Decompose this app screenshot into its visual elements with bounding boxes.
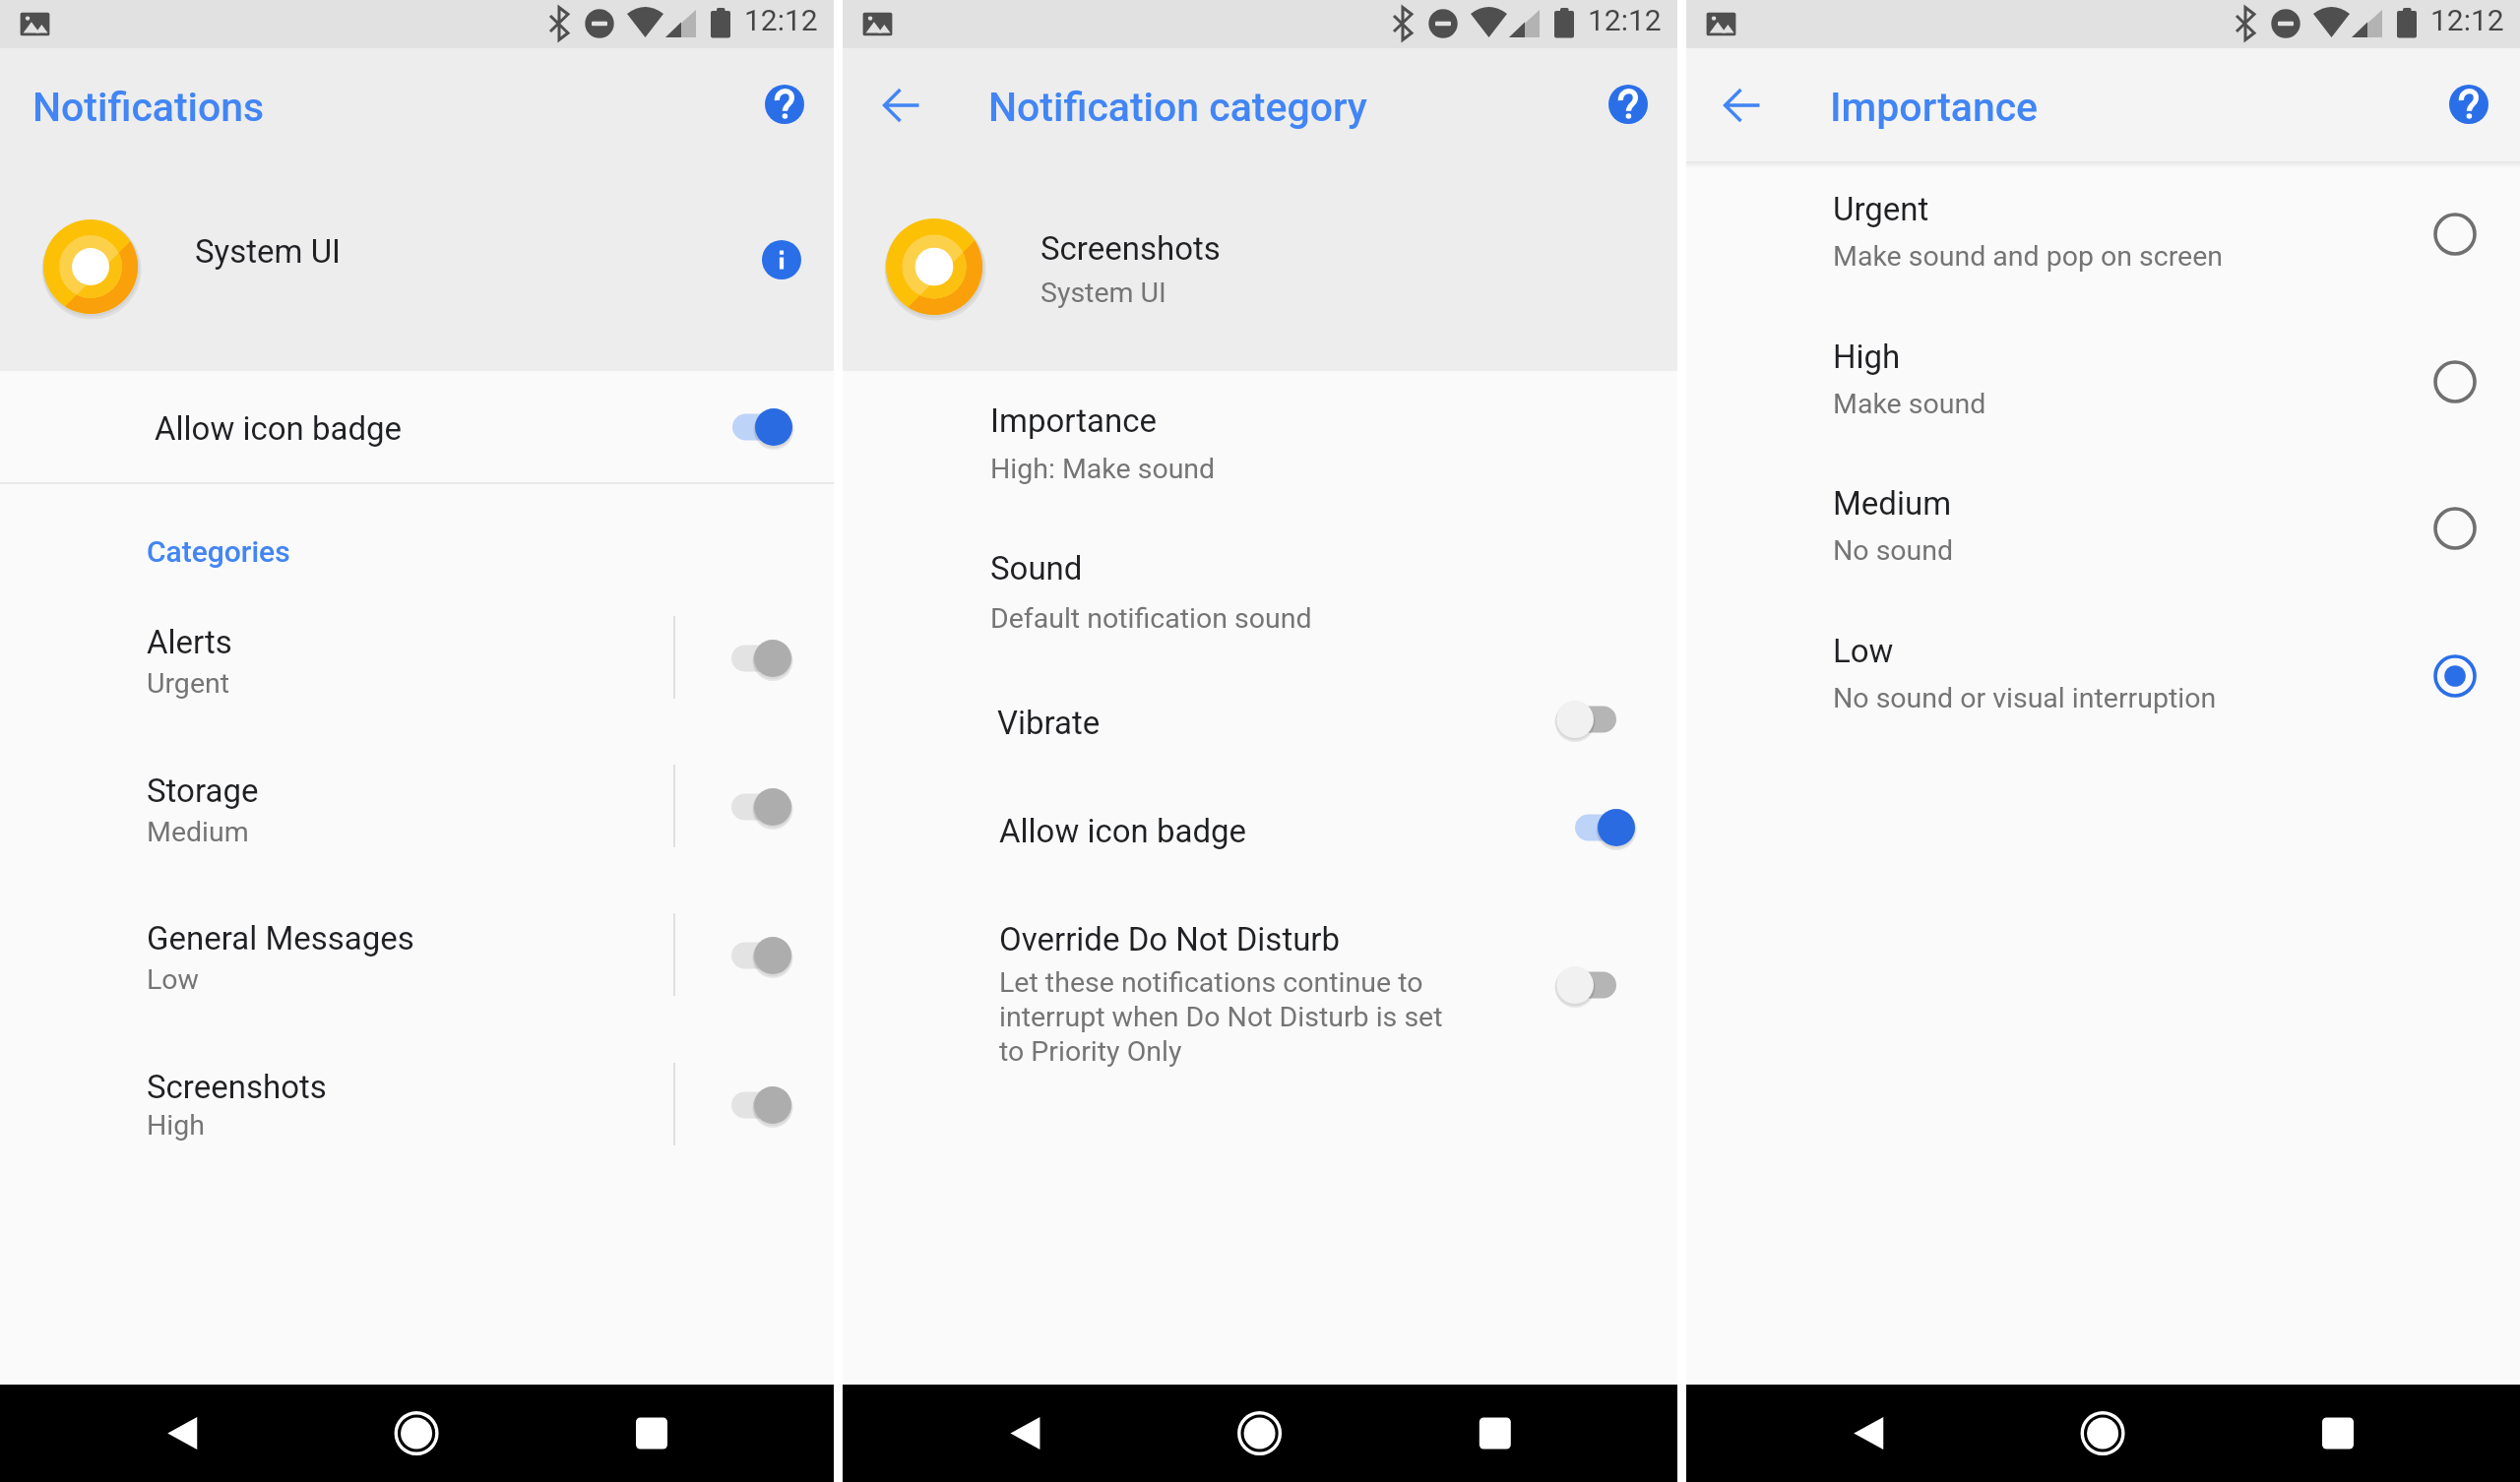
- staticText: to Priority Only: [999, 1035, 1182, 1068]
- staticText: High: [147, 1109, 205, 1142]
- staticText: Categories: [147, 534, 290, 569]
- staticText: Medium: [147, 816, 249, 848]
- button[interactable]: Allow icon badge: [0, 371, 834, 482]
- staticText: Make sound and pop on screen: [1833, 240, 2224, 273]
- button[interactable]: Importance: [843, 391, 1677, 489]
- staticText: High: Make sound: [990, 453, 1216, 485]
- staticText: Screenshots: [1040, 229, 1221, 268]
- staticText: Low: [1833, 632, 1894, 670]
- staticText: Notification category: [988, 84, 1367, 131]
- staticText: 12:12: [744, 3, 818, 37]
- button[interactable]: Vibrate: [843, 692, 1677, 747]
- staticText: Medium: [1833, 484, 1952, 523]
- button[interactable]: Back: [1711, 74, 1774, 137]
- button[interactable]: Categories: [0, 497, 834, 572]
- staticText: System UI: [195, 232, 342, 271]
- button[interactable]: High: [1686, 327, 2520, 443]
- staticText: Allow icon badge: [999, 812, 1247, 850]
- button[interactable]: General Messages: [0, 911, 834, 1027]
- button[interactable]: Toggle General Messages: [718, 928, 828, 983]
- button[interactable]: Medium: [1686, 473, 2520, 589]
- button[interactable]: Alerts: [0, 615, 834, 731]
- staticText: Default notification sound: [990, 602, 1312, 635]
- button[interactable]: Storage: [0, 764, 834, 880]
- button[interactable]: Override Do Not Disturb: [843, 910, 1677, 1087]
- staticText: Low: [147, 963, 200, 996]
- button[interactable]: Toggle Screenshots: [718, 1078, 828, 1133]
- staticText: System UI: [1040, 277, 1166, 309]
- button[interactable]: Sound: [843, 538, 1677, 637]
- staticText: Make sound: [1833, 388, 1986, 420]
- staticText: Screenshots: [147, 1068, 327, 1106]
- staticText: Urgent: [147, 667, 230, 700]
- staticText: No sound: [1833, 534, 1954, 567]
- staticText: High: [1833, 338, 1901, 376]
- button[interactable]: App info: [750, 228, 813, 291]
- button[interactable]: Allow icon badge: [843, 800, 1677, 855]
- button[interactable]: Help: [753, 73, 816, 136]
- button[interactable]: Urgent: [1686, 179, 2520, 295]
- staticText: interrupt when Do Not Disturb is set: [999, 1001, 1443, 1033]
- staticText: Vibrate: [997, 704, 1101, 742]
- staticText: 12:12: [2430, 3, 2504, 37]
- staticText: 12:12: [1588, 3, 1662, 37]
- staticText: Let these notifications continue to: [999, 966, 1423, 999]
- staticText: General Messages: [147, 919, 414, 957]
- staticText: Alerts: [147, 623, 232, 661]
- button[interactable]: Low: [1686, 621, 2520, 737]
- staticText: Notifications: [32, 84, 265, 131]
- button[interactable]: Toggle Alerts: [718, 631, 828, 686]
- button[interactable]: Back: [870, 74, 933, 137]
- staticText: Allow icon badge: [155, 409, 403, 448]
- button[interactable]: Screenshots: [0, 1060, 834, 1176]
- staticText: Override Do Not Disturb: [999, 920, 1341, 958]
- button[interactable]: Help: [2437, 73, 2500, 136]
- staticText: No sound or visual interruption: [1833, 682, 2217, 714]
- button[interactable]: Toggle Storage: [718, 779, 828, 834]
- staticText: Sound: [990, 549, 1083, 587]
- button[interactable]: Help: [1597, 73, 1660, 136]
- staticText: Urgent: [1833, 190, 1929, 228]
- staticText: Importance: [990, 401, 1157, 440]
- staticText: Importance: [1830, 84, 2039, 131]
- staticText: Storage: [147, 772, 259, 810]
